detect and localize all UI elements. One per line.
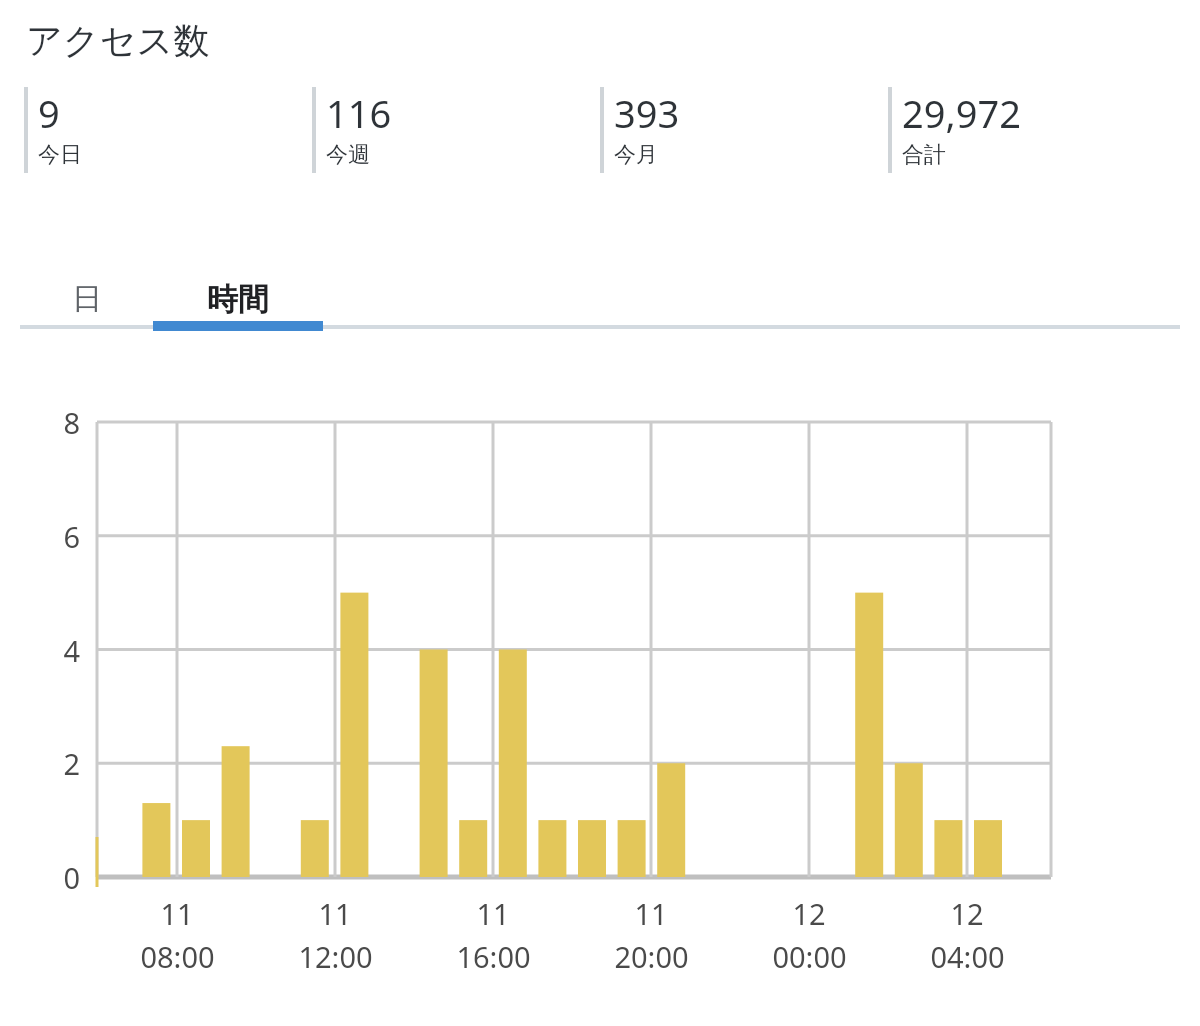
staticText: 29,972	[902, 87, 1021, 139]
staticText: 今月	[614, 141, 658, 169]
button[interactable]: 393	[576, 87, 864, 173]
staticText: 11	[476, 894, 510, 933]
staticText: 2	[63, 744, 80, 783]
staticText: 12:00	[298, 937, 373, 976]
staticText: 11	[634, 894, 668, 933]
button[interactable]: 29,972	[864, 87, 1152, 173]
staticText: 9	[38, 87, 60, 139]
staticText: 11	[318, 894, 352, 933]
staticText: 6	[63, 517, 80, 556]
button[interactable]: 日	[20, 261, 153, 337]
staticText: 今週	[326, 141, 370, 169]
staticText: 12	[792, 894, 826, 933]
staticText: 20:00	[614, 937, 689, 976]
staticText: アクセス数	[26, 18, 210, 63]
staticText: 12	[950, 894, 984, 933]
staticText: 11	[160, 894, 194, 933]
button[interactable]: 9	[0, 87, 288, 173]
staticText: 8	[63, 403, 80, 442]
staticText: 08:00	[140, 937, 215, 976]
staticText: 00:00	[772, 937, 847, 976]
staticText: 合計	[902, 141, 946, 169]
staticText: 16:00	[456, 937, 531, 976]
button[interactable]: 116	[288, 87, 576, 173]
staticText: 116	[326, 87, 392, 139]
staticText: 4	[63, 631, 80, 670]
staticText: 393	[614, 87, 680, 139]
button[interactable]: 時間	[153, 261, 323, 337]
staticText: 0	[63, 858, 80, 897]
staticText: 日	[72, 280, 102, 318]
staticText: 時間	[207, 280, 269, 319]
staticText: 今日	[38, 141, 82, 169]
staticText: 04:00	[930, 937, 1005, 976]
